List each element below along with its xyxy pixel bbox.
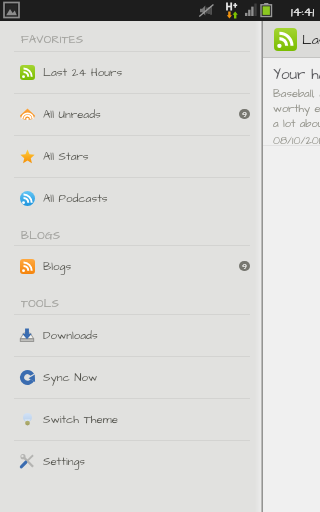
button[interactable]: Downloads [0,314,263,356]
staticText: 9 [242,261,247,271]
staticText: FAVORITES [21,32,84,47]
staticText: Blogs [43,259,72,275]
staticText: BLOGS [21,228,61,243]
staticText: Sync Now [43,370,98,386]
staticText: Your half- [273,64,320,85]
staticText: Settings [43,454,86,470]
button[interactable]: Blogs [0,245,263,287]
staticText: Switch Theme [43,412,118,428]
staticText: All Stars [43,149,89,165]
button[interactable]: All Podcasts [0,177,263,219]
staticText: Baseball, a [273,86,320,101]
staticText: 9 [242,109,247,119]
staticText: worthy ent [273,101,320,116]
staticText: All Unreads [43,107,101,123]
button[interactable]: Switch Theme [0,398,263,440]
staticText: 08/10/2013 [273,133,320,146]
staticText: Last 24 Hours [302,30,320,49]
button[interactable]: Sync Now [0,356,263,398]
staticText: 14:41 [291,3,315,21]
button[interactable]: Settings [0,440,263,482]
button[interactable]: Your half- [0,58,320,146]
button[interactable]: All Unreads [0,93,263,135]
staticText: Downloads [43,328,98,344]
staticText: TOOLS [21,296,60,311]
button[interactable]: Last 24 Hours [0,51,263,93]
staticText: a lot about [273,116,320,131]
staticText: All Podcasts [43,191,108,207]
button[interactable]: All Stars [0,135,263,177]
staticText: Last 24 Hours [43,65,123,81]
